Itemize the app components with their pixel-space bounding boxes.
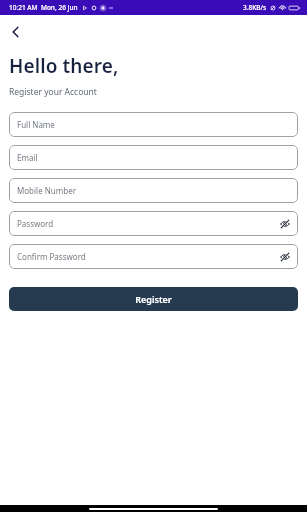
staticText: Email [17, 152, 38, 163]
button[interactable]: Toggle password visibility [279, 251, 291, 263]
staticText: Password [17, 218, 54, 229]
button[interactable]: Password [9, 211, 298, 236]
button[interactable]: Mobile Number [9, 178, 298, 203]
staticText: Confirm Password [17, 251, 86, 262]
staticText: Register your Account [9, 86, 97, 98]
staticText: Register [135, 293, 172, 305]
button[interactable]: Full Name [9, 112, 298, 137]
button[interactable]: Toggle password visibility [279, 218, 291, 230]
staticText: Hello there, [9, 53, 119, 79]
button[interactable]: Email [9, 145, 298, 170]
staticText: Full Name [17, 119, 55, 130]
staticText: 3.8KB/s [243, 3, 267, 12]
staticText: 10:21 AM Mon, 26 Jun [9, 3, 78, 12]
button[interactable]: Confirm Password [9, 244, 298, 269]
staticText: Mobile Number [17, 185, 76, 196]
button[interactable]: Back [9, 21, 31, 43]
button[interactable]: Register [9, 287, 298, 311]
